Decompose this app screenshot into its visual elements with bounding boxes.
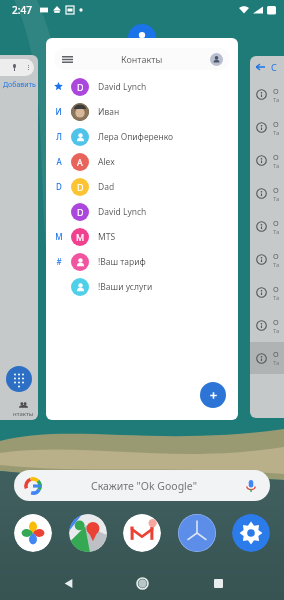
staticText: D	[77, 181, 84, 193]
staticText: #	[56, 256, 62, 267]
staticText: О	[273, 284, 279, 294]
staticText: Та	[273, 162, 280, 170]
staticText: Та	[273, 228, 280, 236]
staticText: О	[273, 218, 279, 228]
staticText: M	[55, 231, 63, 242]
staticText: О	[273, 152, 279, 162]
button[interactable]: О	[256, 309, 284, 342]
staticText: Dad	[98, 181, 115, 193]
button[interactable]: Maps	[69, 514, 107, 552]
button[interactable]: О	[256, 177, 284, 210]
button[interactable]: Settings app card	[250, 56, 284, 418]
button[interactable]: О	[256, 243, 284, 276]
staticText: !Ваш тариф	[98, 256, 146, 268]
staticText: 2:47	[12, 3, 32, 17]
button[interactable]: D	[46, 174, 238, 199]
staticText: A	[77, 156, 83, 168]
button[interactable]: Contacts app icon	[128, 24, 156, 52]
button[interactable]: !Ваши услуги	[46, 274, 238, 299]
staticText: A	[56, 156, 62, 167]
staticText: О	[273, 185, 279, 195]
button[interactable]: О	[256, 144, 284, 177]
button[interactable]: D	[46, 199, 238, 224]
staticText: MTS	[98, 231, 116, 243]
button[interactable]: A	[46, 149, 238, 174]
button[interactable]: Photos	[14, 514, 52, 552]
button[interactable]: M	[46, 224, 238, 249]
staticText: Та	[273, 129, 280, 137]
staticText: D	[77, 81, 84, 93]
staticText: Та	[273, 195, 280, 203]
staticText: Лера Опиференко	[98, 131, 174, 143]
staticText: Та	[273, 96, 280, 104]
staticText: О	[273, 251, 279, 261]
button[interactable]: О	[256, 210, 284, 243]
staticText: Добавить	[3, 80, 36, 90]
button[interactable]: Account	[210, 53, 223, 66]
button[interactable]: Dialpad	[6, 366, 32, 392]
staticText: О	[273, 119, 279, 129]
staticText: Скажите "Ok Google"	[91, 479, 197, 493]
button[interactable]: Contacts app card	[46, 38, 238, 420]
staticText: нтакты	[13, 410, 34, 418]
staticText: David Lynch	[98, 81, 147, 93]
staticText: Л	[56, 131, 62, 142]
staticText: David Lynch	[98, 206, 147, 218]
button[interactable]: Add contact	[200, 382, 226, 408]
staticText: D	[77, 206, 84, 218]
button[interactable]: Л	[46, 124, 238, 149]
button[interactable]: И	[46, 99, 238, 124]
staticText: Контакты	[121, 53, 163, 65]
button[interactable]: Home	[132, 573, 152, 593]
staticText: И	[55, 106, 62, 117]
button[interactable]: #	[46, 249, 238, 274]
staticText: Та	[273, 327, 280, 335]
button[interactable]: Google search	[14, 470, 270, 501]
button[interactable]: Gmail	[123, 514, 161, 552]
staticText: Та	[273, 294, 280, 302]
button[interactable]: Phone app card	[0, 55, 38, 420]
button[interactable]: О	[256, 111, 284, 144]
staticText: C	[271, 61, 277, 73]
staticText: Alex	[98, 156, 115, 168]
staticText: О	[273, 317, 279, 327]
staticText: Та	[273, 261, 280, 269]
button[interactable]: Clock	[178, 514, 216, 552]
staticText: !Ваши услуги	[98, 281, 153, 293]
button[interactable]: О	[256, 276, 284, 309]
button[interactable]: О	[256, 78, 284, 111]
button[interactable]: Settings	[232, 514, 270, 552]
staticText: D	[56, 181, 62, 192]
button[interactable]: Recents	[208, 573, 228, 593]
staticText: Та	[273, 359, 280, 367]
button[interactable]: О	[256, 342, 284, 374]
button[interactable]: Контакты	[54, 48, 230, 70]
staticText: M	[76, 231, 85, 243]
staticText: Иван	[98, 106, 120, 118]
button[interactable]: Back	[58, 573, 78, 593]
staticText: О	[273, 86, 279, 96]
staticText: О	[273, 349, 279, 359]
button[interactable]: D	[46, 74, 238, 99]
